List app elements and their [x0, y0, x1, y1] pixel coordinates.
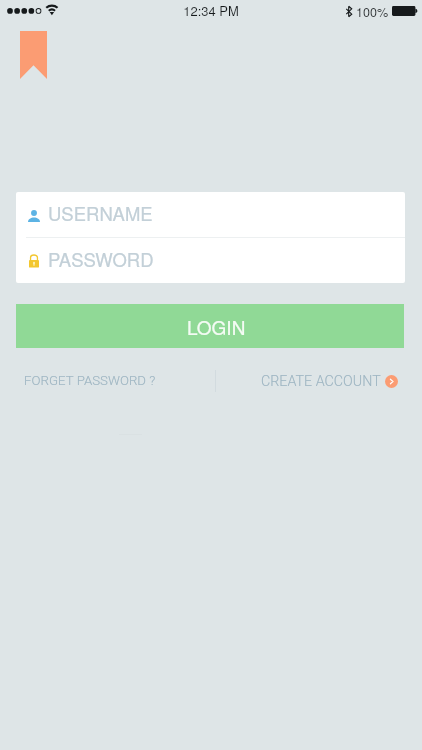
staticText: LOGIN: [187, 313, 246, 340]
other: Bluetooth: [346, 6, 352, 17]
button[interactable]: CREATE ACCOUNT: [216, 366, 422, 396]
staticText: USERNAME: [48, 200, 153, 226]
staticText: 100%: [356, 3, 389, 19]
staticText: 12:34 PM: [0, 1, 422, 20]
button[interactable]: LOGIN: [16, 304, 404, 348]
other: Create account: [385, 375, 398, 388]
staticText: PASSWORD: [48, 246, 154, 272]
other: Battery 100 percent: [392, 6, 418, 16]
staticText: FORGET PASSWORD ?: [24, 373, 156, 389]
button[interactable]: FORGET PASSWORD ?: [0, 366, 215, 396]
button[interactable]: USERNAME: [16, 192, 405, 237]
button[interactable]: PASSWORD: [16, 238, 405, 283]
staticText: CREATE ACCOUNT: [261, 373, 381, 390]
button[interactable]: Bookmarks: [20, 31, 47, 79]
